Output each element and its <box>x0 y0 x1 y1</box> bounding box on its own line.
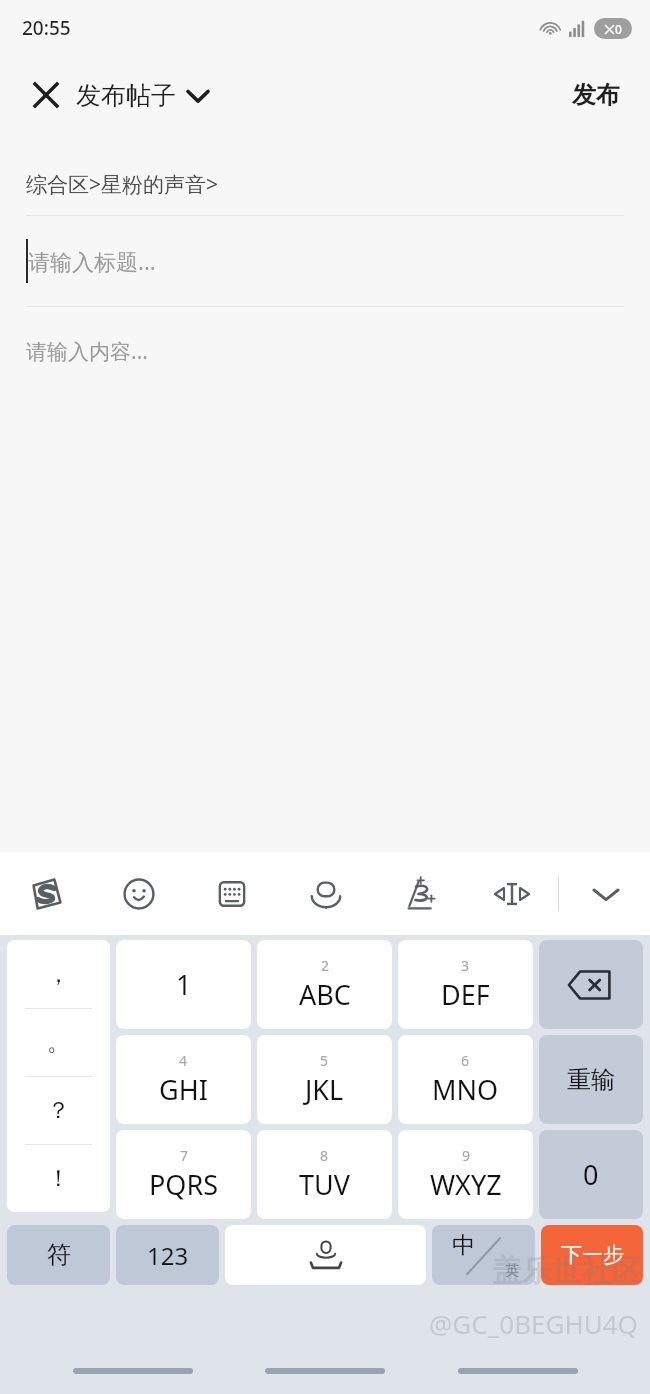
staticText: 0 <box>583 1156 599 1193</box>
button[interactable]: 123 <box>116 1225 219 1285</box>
button[interactable]: 7 <box>116 1130 251 1219</box>
staticText: 4 <box>179 1051 188 1070</box>
staticText: 2 <box>321 956 330 975</box>
staticText: 9 <box>462 1146 471 1165</box>
staticText: 英 <box>505 1262 519 1280</box>
staticText: 20:55 <box>22 15 71 41</box>
button[interactable]: Handwriting <box>392 866 448 922</box>
staticText: 重输 <box>567 1065 615 1095</box>
button[interactable]: ！ <box>7 1145 110 1212</box>
button[interactable]: 重输 <box>539 1035 643 1124</box>
staticText: 综合区>星粉的声音> <box>26 170 219 199</box>
staticText: 8 <box>320 1146 329 1165</box>
staticText: 3 <box>461 956 470 975</box>
staticText: 符 <box>47 1240 71 1270</box>
button[interactable]: Voice input <box>298 866 354 922</box>
button[interactable]: 发布帖子 <box>76 80 210 111</box>
button[interactable]: 下一步 <box>541 1225 643 1285</box>
staticText: 5 <box>320 1051 329 1070</box>
button[interactable]: 请输入内容... <box>0 307 650 380</box>
staticText: ！ <box>47 1164 70 1193</box>
staticText: 。 <box>47 1028 70 1057</box>
staticText: ？ <box>47 1096 70 1125</box>
staticText: 下一步 <box>561 1242 624 1268</box>
staticText: 发布 <box>572 80 620 110</box>
button[interactable]: 2 <box>257 940 392 1029</box>
button[interactable]: 5 <box>257 1035 392 1124</box>
button[interactable]: Backspace <box>539 940 643 1029</box>
button[interactable]: 符 <box>7 1225 110 1285</box>
button[interactable]: 发布 <box>562 72 630 118</box>
button[interactable]: 1 <box>116 940 251 1029</box>
staticText: 0 <box>615 21 622 37</box>
staticText: 7 <box>180 1146 189 1165</box>
staticText: MNO <box>432 1071 499 1108</box>
button[interactable]: ？ <box>7 1077 110 1144</box>
staticText: 盖乐世社区 <box>492 1252 642 1290</box>
button[interactable]: Sogou input <box>18 866 74 922</box>
staticText: 请输入标题... <box>28 246 156 276</box>
button[interactable]: Emoji <box>111 866 167 922</box>
button[interactable]: Move cursor <box>484 866 540 922</box>
button[interactable]: Hide keyboard <box>580 868 632 920</box>
button[interactable]: 3 <box>398 940 533 1029</box>
staticText: 请输入内容... <box>26 337 148 366</box>
staticText: WXYZ <box>430 1166 502 1203</box>
button[interactable]: 中 <box>432 1225 535 1285</box>
button[interactable]: Keyboard layout <box>204 866 260 922</box>
staticText: @GC_0BEGHU4Q <box>429 1306 638 1341</box>
staticText: 发布帖子 <box>76 80 176 111</box>
button[interactable]: 8 <box>257 1130 392 1219</box>
staticText: 中 <box>452 1231 475 1260</box>
button[interactable]: 。 <box>7 1009 110 1076</box>
button[interactable]: Space <box>225 1225 426 1285</box>
staticText: GHI <box>159 1071 208 1108</box>
button[interactable]: 请输入标题... <box>0 216 650 306</box>
staticText: PQRS <box>149 1166 219 1203</box>
staticText: 1 <box>176 966 192 1003</box>
staticText: TUV <box>299 1166 350 1203</box>
button[interactable]: Close <box>22 71 70 119</box>
button[interactable]: 0 <box>539 1130 643 1219</box>
staticText: ABC <box>299 976 351 1013</box>
staticText: 123 <box>147 1239 189 1272</box>
staticText: JKL <box>305 1071 344 1108</box>
staticText: 6 <box>461 1051 470 1070</box>
button[interactable]: 6 <box>398 1035 533 1124</box>
button[interactable]: 9 <box>398 1130 533 1219</box>
button[interactable]: Navigation <box>265 1368 385 1374</box>
staticText: DEF <box>441 976 490 1013</box>
button[interactable]: Navigation <box>458 1368 578 1374</box>
staticText: ， <box>47 960 70 989</box>
button[interactable]: Navigation <box>73 1368 193 1374</box>
button[interactable]: ， <box>7 940 110 1008</box>
button[interactable]: 综合区>星粉的声音> <box>0 156 650 215</box>
button[interactable]: 4 <box>116 1035 251 1124</box>
